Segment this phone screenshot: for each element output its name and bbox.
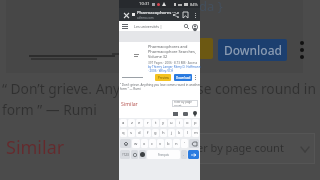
- button[interactable]: v: [157, 139, 164, 148]
- button[interactable]: x: [141, 139, 148, 148]
- button[interactable]: f: [144, 129, 151, 137]
- button[interactable]: Space: [147, 150, 180, 159]
- staticText: 84%: [190, 2, 198, 7]
- staticText: l: [187, 130, 189, 136]
- staticText: · 2006 · Wiley-VCH: [148, 69, 174, 73]
- staticText: .: [183, 152, 185, 157]
- button[interactable]: d: [136, 129, 143, 137]
- staticText: Download: [224, 42, 282, 58]
- button[interactable]: er by page count: [196, 133, 315, 164]
- staticText: form ” — Rumi: [2, 100, 97, 119]
- staticText: Volume 32: [148, 54, 168, 59]
- staticText: ?123: [122, 153, 129, 157]
- button[interactable]: Enter: [188, 150, 199, 159]
- button[interactable]: q: [120, 129, 127, 137]
- staticText: n: [175, 141, 178, 147]
- staticText: f: [147, 130, 149, 136]
- button[interactable]: w: [132, 139, 140, 148]
- button[interactable]: Location: [193, 111, 197, 117]
- button[interactable]: Stickers: [183, 112, 188, 116]
- staticText: Pharmacophore Searches,: [148, 49, 196, 54]
- button[interactable]: Symbols: [120, 150, 130, 159]
- staticText: j: [171, 130, 173, 136]
- button[interactable]: j: [168, 129, 175, 137]
- button[interactable]: More: [190, 10, 200, 20]
- staticText: Preview: [158, 76, 169, 80]
- staticText: x: [143, 141, 146, 147]
- staticText: Similar: [6, 135, 65, 160]
- button[interactable]: y: [160, 119, 167, 127]
- staticText: e: [138, 120, 141, 126]
- staticText: d: [138, 130, 141, 136]
- button[interactable]: Filter by page count: [172, 100, 198, 107]
- staticText: y: [162, 120, 165, 126]
- staticText: form ” — Rumi: [120, 87, 141, 91]
- button[interactable]: c: [149, 139, 156, 148]
- staticText: Pharmacophores and: [148, 44, 188, 49]
- staticText: k: [178, 130, 181, 136]
- button[interactable]: a: [120, 119, 127, 127]
- button[interactable]: z: [128, 119, 135, 127]
- button[interactable]: p: [192, 119, 199, 127]
- button[interactable]: Close: [121, 10, 131, 20]
- button[interactable]: Menu: [122, 24, 128, 29]
- button[interactable]: s: [128, 129, 135, 137]
- button[interactable]: b: [165, 139, 172, 148]
- button[interactable]: Period: [181, 150, 187, 159]
- staticText: h: [162, 130, 165, 136]
- button[interactable]: Search: [182, 22, 191, 31]
- button[interactable]: Download: [218, 39, 287, 61]
- button[interactable]: r: [144, 119, 151, 127]
- button[interactable]: Account: [190, 22, 199, 31]
- button[interactable]: More options: [294, 39, 310, 60]
- button[interactable]: Preview: [155, 74, 171, 81]
- staticText: o: [186, 120, 189, 126]
- staticText: v: [159, 141, 162, 147]
- staticText: Les universités |: [134, 24, 162, 29]
- button[interactable]: e: [136, 119, 143, 127]
- staticText: z: [131, 120, 133, 126]
- staticText: u: [170, 120, 173, 126]
- button[interactable]: Download: [174, 74, 192, 81]
- button[interactable]: Voice input: [139, 150, 146, 159]
- button[interactable]: u: [168, 119, 175, 127]
- button[interactable]: Shift: [120, 139, 131, 148]
- staticText: s: [130, 130, 133, 136]
- staticText: Français: [158, 153, 169, 157]
- staticText: 397 Pages · 2006 · 8.73 MB · Access: [148, 61, 198, 65]
- button[interactable]: i: [176, 119, 183, 127]
- button[interactable]: More options: [195, 75, 196, 80]
- button[interactable]: ': [181, 139, 188, 148]
- staticText: “ Don't grieve. Anything you lose comes …: [120, 83, 201, 87]
- button[interactable]: Backspace: [189, 139, 199, 148]
- staticText: Pharmacophores ⋯: [137, 10, 177, 16]
- button[interactable]: t: [152, 119, 159, 127]
- staticText: da }: [199, 0, 223, 15]
- staticText: 10:31: [139, 1, 150, 7]
- button[interactable]: l: [184, 129, 191, 137]
- button[interactable]: Language: [131, 150, 138, 159]
- button[interactable]: h: [160, 129, 167, 137]
- staticText: “ Don’t grieve. Anything you lose comes …: [2, 79, 320, 98]
- button[interactable]: o: [184, 119, 191, 127]
- staticText: c: [151, 141, 154, 147]
- staticText: r: [147, 120, 149, 126]
- staticText: ': [184, 141, 185, 147]
- staticText: m: [194, 130, 198, 136]
- button[interactable]: Bookmark: [180, 9, 191, 20]
- staticText: a: [122, 120, 125, 126]
- button[interactable]: Preview: [199, 38, 213, 59]
- staticText: p: [194, 120, 197, 126]
- button[interactable]: n: [173, 139, 180, 148]
- button[interactable]: Share: [170, 9, 181, 20]
- staticText: t: [155, 120, 157, 126]
- staticText: aifemo.com: [137, 16, 154, 20]
- staticText: Download: [176, 76, 191, 80]
- staticText: w: [134, 141, 138, 147]
- staticText: er by page count: [197, 140, 284, 155]
- button[interactable]: m: [192, 129, 199, 137]
- button[interactable]: g: [152, 129, 159, 137]
- staticText: i: [179, 120, 181, 126]
- button[interactable]: k: [176, 129, 183, 137]
